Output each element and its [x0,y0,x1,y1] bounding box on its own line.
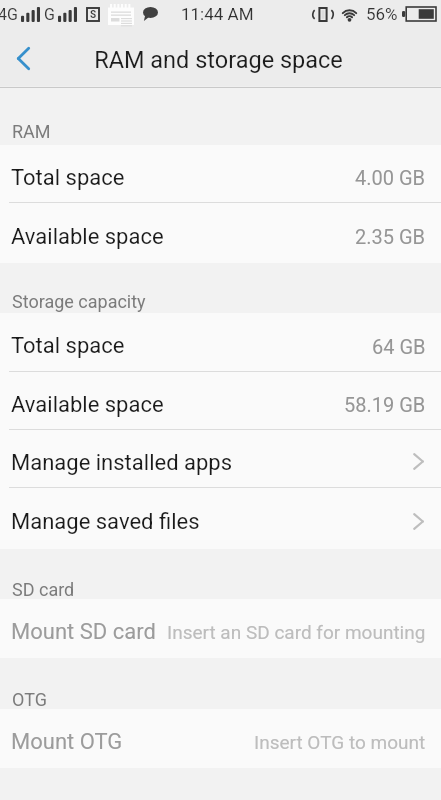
staticText: Available space [11,224,164,250]
staticText: 64 GB [372,335,426,358]
staticText: Manage saved files [11,509,200,535]
staticText: 11:44 AM [181,4,254,24]
staticText: Total space [11,333,125,359]
button[interactable]: Mount SD card [0,599,441,658]
staticText: 2.35 GB [355,225,426,248]
staticText: Insert an SD card for mounting [167,621,426,643]
staticText: OTG [12,689,47,710]
staticText: Storage capacity [12,291,146,312]
staticText: RAM and storage space [94,46,343,74]
staticText: S [90,9,97,21]
staticText: Mount SD card [11,619,156,645]
staticText: Insert OTG to mount [254,731,426,753]
staticText: 4G [0,5,18,24]
staticText: 4.00 GB [355,166,426,189]
button[interactable]: Available space [0,372,441,430]
button[interactable]: Back [0,33,46,83]
button[interactable]: Mount OTG [0,709,441,768]
staticText: Manage installed apps [11,450,233,476]
button[interactable]: Total space [0,313,441,372]
button[interactable]: Manage installed apps [0,430,441,488]
staticText: SD card [12,579,75,600]
button[interactable]: Manage saved files [0,488,441,549]
button[interactable]: Total space [0,145,441,203]
staticText: Available space [11,392,164,418]
staticText: 58.19 GB [344,393,426,416]
button[interactable]: Available space [0,203,441,263]
staticText: G [44,5,55,24]
staticText: 56% [366,4,398,24]
staticText: Total space [11,165,125,191]
staticText: Mount OTG [11,729,123,755]
staticText: RAM [12,121,51,142]
